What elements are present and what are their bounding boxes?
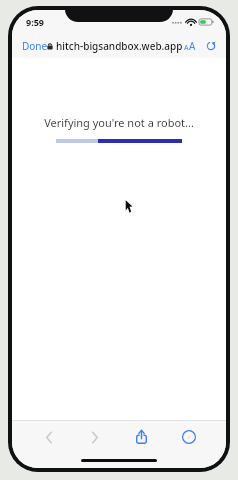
staticText: 9:59 <box>26 16 44 28</box>
button[interactable]: Open in Safari <box>165 425 212 449</box>
button[interactable]: Text size options <box>182 36 198 56</box>
button[interactable]: Done <box>12 35 56 57</box>
button[interactable]: Back <box>26 425 72 449</box>
staticText: A <box>189 39 196 53</box>
staticText: hitch-bigsandbox.web.app <box>56 39 183 53</box>
staticText: Verifying you're not a robot... <box>44 115 194 130</box>
button[interactable]: Share <box>118 425 165 449</box>
button[interactable]: Reload page <box>204 38 218 54</box>
staticText: A <box>184 43 189 53</box>
button[interactable]: Forward <box>72 425 118 449</box>
button[interactable]: hitch-bigsandbox.web.app <box>47 39 183 53</box>
